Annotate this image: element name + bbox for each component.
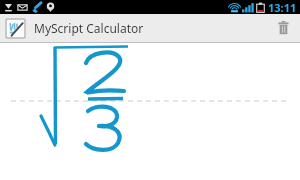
button[interactable]: Handwriting input area [0, 43, 300, 180]
button[interactable]: MyScript Calculator home [5, 18, 26, 39]
staticText: 13:11 [268, 0, 297, 14]
staticText: MyScript Calculator [34, 20, 271, 36]
button[interactable]: Clear [271, 15, 295, 41]
